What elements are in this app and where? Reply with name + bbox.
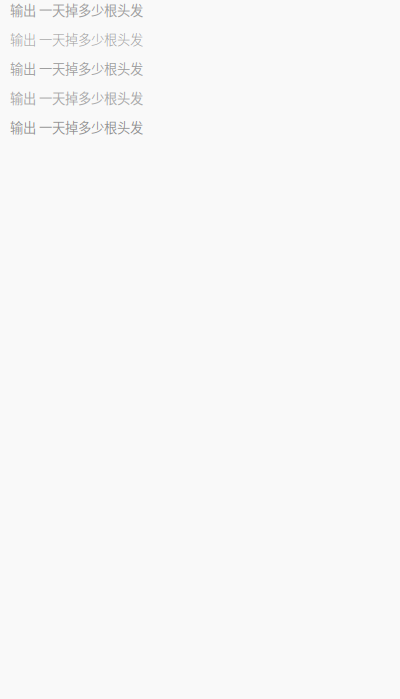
staticText: 输出 一天掉多少根头发 [10,88,143,107]
staticText: 输出 一天掉多少根头发 [10,59,143,78]
staticText: 输出 一天掉多少根头发 [10,117,143,136]
staticText: 输出 一天掉多少根头发 [10,0,143,19]
staticText: 输出 一天掉多少根头发 [10,29,143,49]
